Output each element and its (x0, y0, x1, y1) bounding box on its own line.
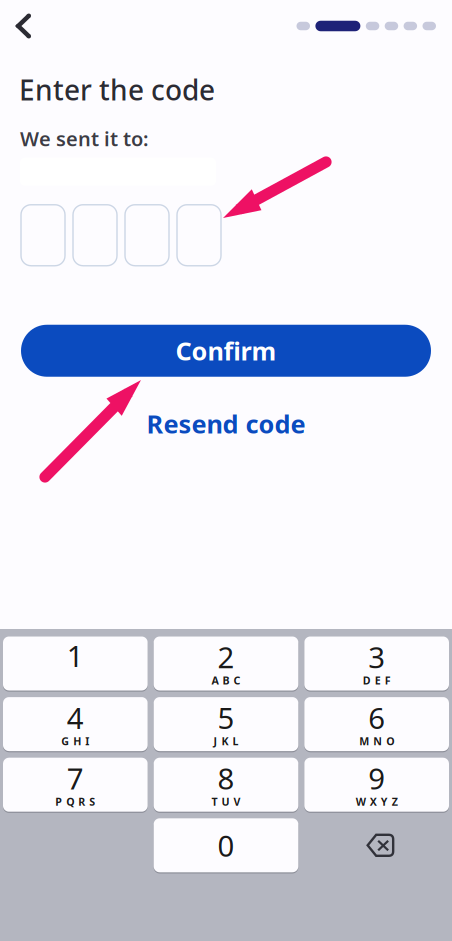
button[interactable]: 3 (304, 636, 449, 691)
button[interactable]: 0 (154, 818, 298, 873)
button[interactable]: Digit 2 (73, 205, 117, 266)
staticText: P Q R S (55, 795, 95, 809)
button[interactable]: Confirm (21, 325, 431, 377)
staticText: 5 (217, 698, 234, 737)
button[interactable]: Back (0, 5, 44, 46)
staticText: We sent it to: (20, 125, 149, 152)
staticText: Enter the code (19, 71, 215, 108)
staticText: A B C (211, 673, 240, 688)
button[interactable]: Digit 4 (177, 205, 221, 266)
staticText: 4 (67, 698, 84, 737)
staticText: Confirm (175, 334, 276, 367)
staticText: 0 (217, 826, 234, 865)
staticText: G H I (61, 734, 89, 748)
staticText: 9 (368, 759, 385, 798)
button[interactable]: Delete (304, 818, 449, 873)
button[interactable]: 6 (304, 697, 449, 752)
button[interactable]: 2 (154, 636, 298, 691)
button[interactable]: Resend code (0, 397, 452, 450)
button[interactable]: 1 (3, 636, 148, 691)
staticText: M N O (359, 734, 394, 748)
button[interactable]: 9 (304, 757, 449, 812)
staticText: T U V (211, 795, 240, 809)
staticText: 1 (67, 636, 84, 675)
button[interactable]: 5 (154, 697, 298, 752)
button[interactable]: 4 (3, 697, 148, 752)
staticText: Resend code (146, 407, 305, 440)
staticText: 3 (368, 637, 385, 676)
button[interactable]: Digit 3 (125, 205, 169, 266)
staticText: D E F (363, 673, 391, 688)
staticText: W X Y Z (356, 795, 398, 809)
staticText: 2 (217, 637, 234, 676)
staticText: 6 (368, 698, 385, 737)
staticText: 7 (67, 759, 84, 798)
staticText: 8 (217, 759, 234, 798)
button[interactable]: 8 (154, 757, 298, 812)
button[interactable]: Digit 1 (21, 205, 65, 266)
staticText: J K L (213, 734, 238, 748)
button[interactable]: 7 (3, 757, 148, 812)
